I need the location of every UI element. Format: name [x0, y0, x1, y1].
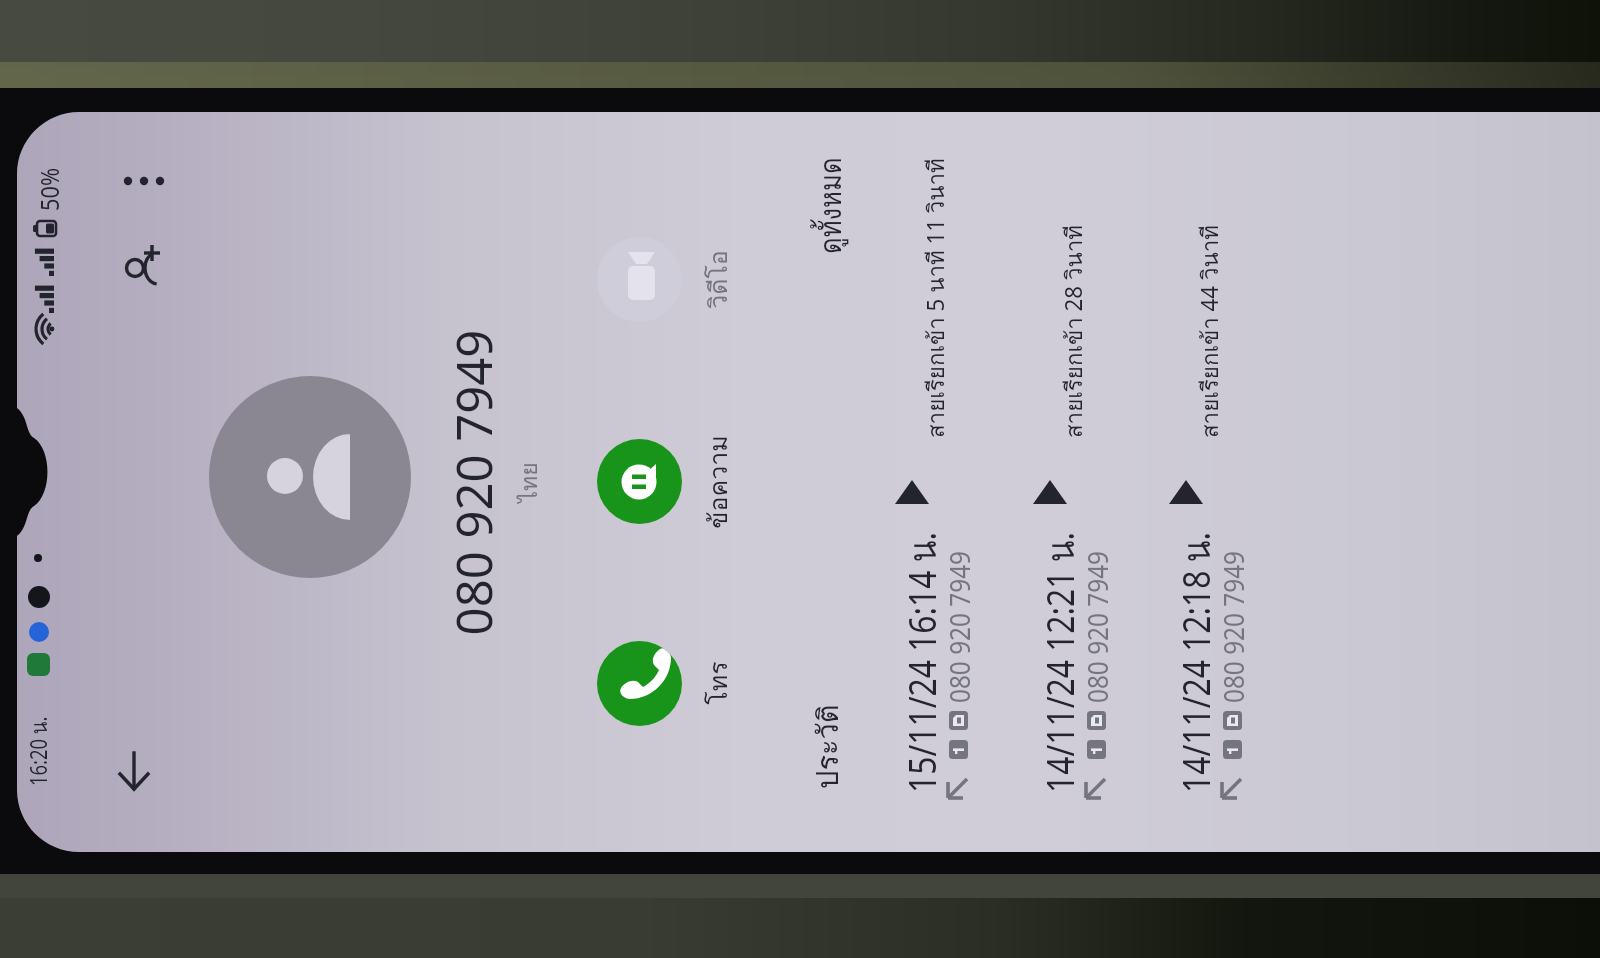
button[interactable]: Back: [104, 741, 164, 801]
staticText: วิดีโอ: [698, 250, 738, 309]
staticText: สายเรียกเข้า 28 วินาที: [1056, 225, 1093, 438]
button[interactable]: วิดีโอ: [597, 210, 738, 350]
staticText: 080 920 7949: [440, 110, 507, 855]
staticText: 080 920 7949: [1214, 551, 1252, 703]
staticText: สายเรียกเข้า 5 นาที 11 วินาที: [918, 158, 955, 438]
button[interactable]: ข้อความ: [597, 412, 738, 552]
button[interactable]: 14/11/24 12:18 น.: [1161, 110, 1297, 855]
button[interactable]: โทร: [597, 614, 738, 754]
staticText: สายเรียกเข้า 44 วินาที: [1192, 225, 1229, 438]
button[interactable]: Contact photo: [209, 376, 411, 578]
button[interactable]: 14/11/24 12:21 น.: [1025, 110, 1161, 855]
staticText: 080 920 7949: [940, 551, 978, 703]
staticText: ไทย: [511, 110, 548, 855]
staticText: 14/11/24 12:18 น.: [1165, 532, 1227, 793]
staticText: ประวัติ: [805, 704, 851, 789]
button[interactable]: Add contact: [115, 236, 179, 300]
staticText: ข้อความ: [698, 435, 738, 529]
staticText: โทร: [698, 661, 738, 705]
staticText: 16:20 น.: [21, 716, 58, 786]
staticText: 15/11/24 16:14 น.: [891, 532, 953, 793]
staticText: ดูทั้งหมด: [808, 157, 854, 254]
button[interactable]: ดูทั้งหมด: [808, 144, 854, 254]
staticText: 50%: [31, 167, 66, 211]
staticText: 080 920 7949: [1078, 551, 1116, 703]
button[interactable]: More options: [114, 151, 174, 211]
button[interactable]: 15/11/24 16:14 น.: [887, 110, 1023, 855]
staticText: 14/11/24 12:21 น.: [1029, 532, 1091, 793]
